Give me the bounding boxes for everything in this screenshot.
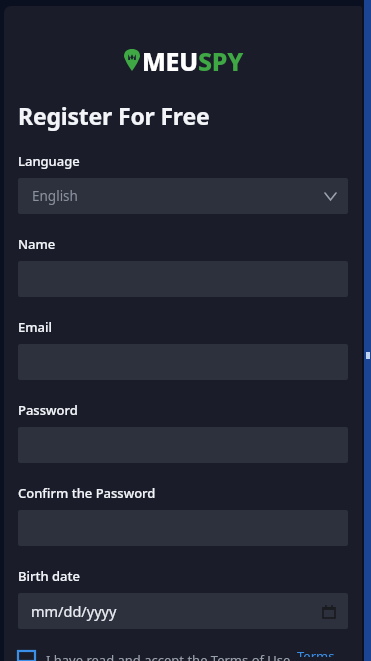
button[interactable]: I have read and accept the Terms of Use xyxy=(46,651,291,661)
staticText: Password xyxy=(18,401,78,419)
staticText: English xyxy=(32,187,78,205)
staticText: SPY xyxy=(198,44,243,78)
staticText: Birth date xyxy=(18,567,80,585)
button[interactable]: Birth date, mm/dd/yyyy xyxy=(18,593,348,629)
button[interactable]: MEUSPY home xyxy=(124,44,243,78)
other: Open calendar xyxy=(323,605,335,618)
staticText: Confirm the Password xyxy=(18,484,156,502)
staticText: Register For Free xyxy=(18,100,210,131)
staticText: mm/dd/yyyy xyxy=(31,601,117,621)
staticText: MEU xyxy=(142,44,198,78)
staticText: Language xyxy=(18,152,80,170)
button[interactable]: Terms xyxy=(297,647,335,657)
button[interactable]: Accept the Terms of Use xyxy=(18,651,35,661)
staticText: Name xyxy=(18,235,56,253)
staticText: Email xyxy=(18,318,53,336)
button[interactable]: Language, English xyxy=(18,178,348,214)
